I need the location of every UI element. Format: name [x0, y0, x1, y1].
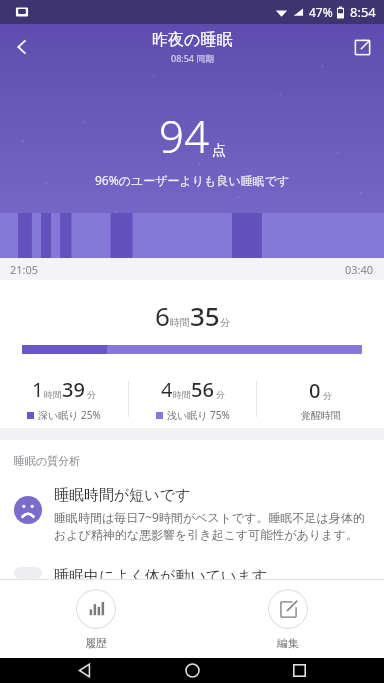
staticText: 時間 [170, 316, 190, 329]
staticText: 時間 [173, 389, 191, 400]
staticText: 35 [190, 298, 220, 333]
staticText: 睡眠の質分析 [14, 454, 81, 468]
staticText: 8:54 [350, 3, 376, 21]
staticText: 47% [309, 4, 333, 20]
staticText: 21:05 [10, 262, 39, 277]
staticText: 時間 [44, 389, 62, 400]
button[interactable]: Back [0, 25, 44, 69]
button[interactable]: 睡眠時間が短いです [0, 486, 384, 543]
staticText: 深い眠り 25% [38, 408, 101, 422]
button[interactable]: Back [63, 658, 107, 683]
staticText: 39 [62, 376, 85, 403]
staticText: 分 [220, 316, 230, 329]
staticText: 96%のユーザーよりも良い睡眠です [95, 172, 290, 188]
button[interactable]: 履歴 [0, 583, 192, 656]
staticText: 1 [32, 376, 44, 403]
staticText: 編集 [277, 636, 299, 650]
staticText: 浅い眠り 75% [167, 408, 230, 422]
staticText: 分 [216, 389, 225, 400]
staticText: 睡眠時間が短いです [54, 486, 191, 505]
button[interactable]: 4 [129, 376, 256, 422]
staticText: 点 [212, 142, 226, 160]
button[interactable]: Recents [277, 658, 321, 683]
staticText: 56 [191, 376, 214, 403]
staticText: 03:40 [345, 262, 374, 277]
staticText: 6 [155, 298, 170, 333]
staticText: 0 [309, 377, 321, 404]
staticText: 履歴 [85, 636, 107, 650]
staticText: 睡眠中によく体が動いています [54, 567, 268, 579]
staticText: 分 [87, 389, 96, 400]
staticText: 94 [159, 106, 210, 166]
staticText: 分 [323, 390, 332, 401]
staticText: 4 [161, 376, 173, 403]
staticText: 昨夜の睡眠 [152, 30, 233, 50]
staticText: 睡眠時間は毎日7~9時間がベストです。睡眠不足は身体的および精神的な悪影響を引き… [54, 509, 370, 543]
button[interactable]: 0 [257, 377, 384, 422]
button[interactable]: Share [340, 25, 384, 69]
button[interactable]: 睡眠中によく体が動いています [0, 567, 384, 579]
button[interactable]: 1 [0, 376, 128, 422]
staticText: 覚醒時間 [301, 409, 341, 422]
button[interactable]: Home [170, 658, 214, 683]
staticText: 08:54 同期 [171, 52, 215, 64]
button[interactable]: 編集 [192, 583, 384, 656]
